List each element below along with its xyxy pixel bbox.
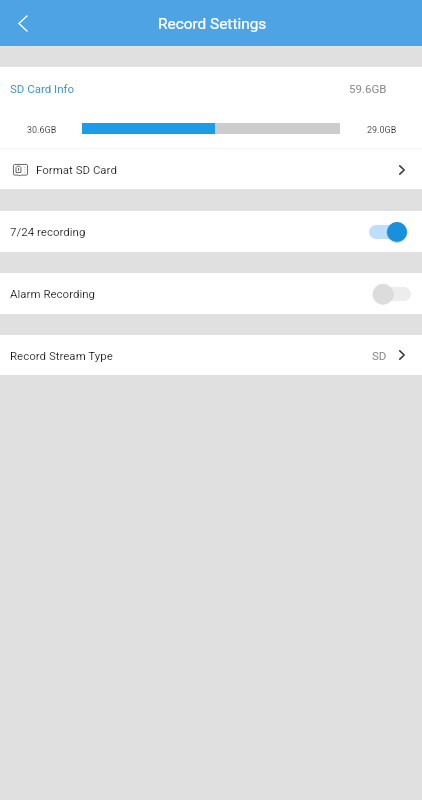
button[interactable]: Record Stream Type: [0, 335, 422, 375]
staticText: Record Settings: [158, 15, 267, 33]
button[interactable]: 7/24 recording: [0, 211, 422, 252]
staticText: 59.6GB: [349, 82, 387, 95]
button[interactable]: Alarm Recording: [0, 273, 422, 314]
button[interactable]: Back: [0, 0, 45, 46]
staticText: 29.0GB: [367, 125, 397, 136]
staticText: Alarm Recording: [10, 287, 96, 300]
staticText: Format SD Card: [36, 163, 117, 176]
staticText: 30.6GB: [27, 125, 57, 136]
staticText: SD: [372, 349, 387, 362]
staticText: SD Card Info: [10, 82, 75, 95]
button[interactable]: Format SD Card: [0, 149, 422, 189]
staticText: Record Stream Type: [10, 349, 113, 362]
staticText: 7/24 recording: [10, 225, 86, 238]
